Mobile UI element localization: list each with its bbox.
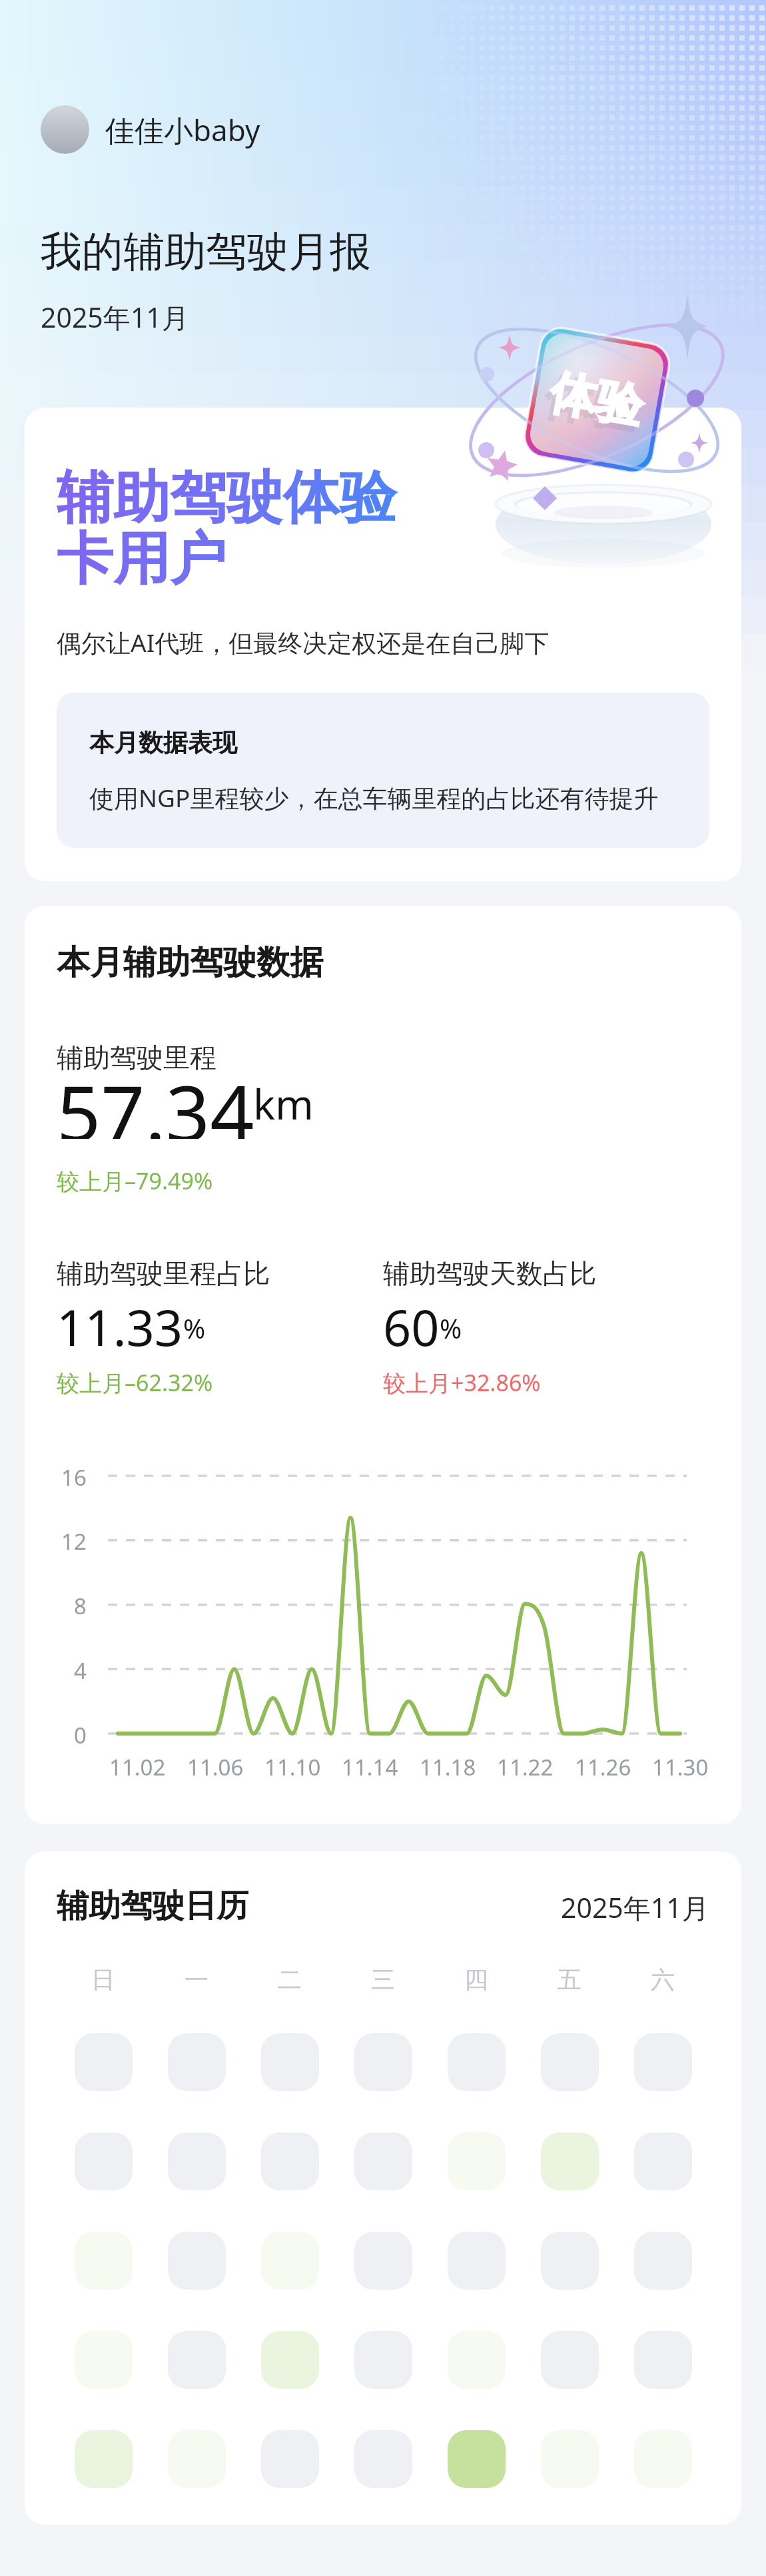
button[interactable] — [354, 2331, 412, 2389]
button[interactable]: Profile photo — [41, 105, 89, 154]
staticText: 使用NGP里程较少，在总车辆里程的占比还有待提升 — [89, 781, 659, 814]
button[interactable] — [75, 2033, 133, 2091]
staticText: % — [183, 1310, 206, 1346]
staticText: 佳佳小baby — [105, 110, 260, 150]
button[interactable] — [168, 2331, 226, 2389]
staticText: 11.06 — [187, 1752, 244, 1782]
button[interactable] — [541, 2033, 599, 2091]
button[interactable] — [448, 2033, 506, 2091]
button[interactable] — [75, 2331, 133, 2389]
button[interactable] — [168, 2232, 226, 2290]
staticText: 12 — [61, 1526, 87, 1556]
staticText: 11.14 — [342, 1752, 398, 1782]
button[interactable] — [75, 2132, 133, 2190]
button[interactable] — [261, 2033, 319, 2091]
staticText: 较上月–62.32% — [57, 1367, 213, 1398]
staticText: 辅助驾驶天数占比 — [383, 1257, 596, 1290]
staticText: 11.02 — [109, 1752, 166, 1782]
staticText: 四 — [464, 1965, 488, 1995]
staticText: 4 — [74, 1656, 87, 1686]
button[interactable] — [261, 2430, 319, 2488]
staticText: 偶尔让AI代班，但最终决定权还是在自己脚下 — [57, 625, 550, 659]
staticText: 本月辅助驾驶数据 — [57, 942, 323, 984]
staticText: 16 — [61, 1462, 87, 1492]
staticText: 五 — [558, 1965, 581, 1995]
button[interactable] — [448, 2232, 506, 2290]
staticText: 辅助驾驶日历 — [57, 1886, 248, 1926]
staticText: 11.18 — [420, 1752, 476, 1782]
button[interactable] — [354, 2232, 412, 2290]
staticText: 较上月–79.49% — [57, 1165, 213, 1196]
staticText: 57.34 — [57, 1059, 254, 1139]
button[interactable] — [261, 2331, 319, 2389]
button[interactable] — [261, 2132, 319, 2190]
staticText: 六 — [651, 1965, 675, 1995]
staticText: 0 — [74, 1720, 87, 1750]
button[interactable] — [354, 2430, 412, 2488]
button[interactable] — [75, 2232, 133, 2290]
staticText: 三 — [371, 1965, 395, 1995]
button[interactable] — [75, 2430, 133, 2488]
button[interactable] — [168, 2033, 226, 2091]
staticText: 11.10 — [264, 1752, 321, 1782]
button[interactable] — [448, 2430, 506, 2488]
button[interactable] — [634, 2430, 692, 2488]
button[interactable] — [634, 2331, 692, 2389]
staticText: km — [253, 1076, 314, 1131]
button[interactable] — [541, 2132, 599, 2190]
button[interactable] — [541, 2331, 599, 2389]
staticText: 辅助驾驶体验 卡用户 — [57, 462, 397, 595]
button[interactable] — [634, 2132, 692, 2190]
staticText: 11.30 — [652, 1752, 709, 1782]
button[interactable] — [261, 2232, 319, 2290]
staticText: 8 — [74, 1591, 87, 1621]
staticText: 一 — [185, 1965, 208, 1995]
staticText: 较上月+32.86% — [383, 1367, 541, 1398]
staticText: 日 — [91, 1965, 115, 1995]
staticText: 11.22 — [497, 1752, 554, 1782]
button[interactable] — [448, 2132, 506, 2190]
staticText: 11.26 — [575, 1752, 631, 1782]
staticText: 60 — [383, 1293, 440, 1351]
button[interactable] — [448, 2331, 506, 2389]
staticText: 辅助驾驶里程 — [57, 1041, 216, 1074]
staticText: 本月数据表现 — [89, 727, 237, 759]
staticText: 2025年11月 — [561, 1889, 709, 1926]
button[interactable] — [168, 2132, 226, 2190]
staticText: 体验 — [541, 368, 643, 442]
button[interactable] — [354, 2132, 412, 2190]
button[interactable] — [634, 2033, 692, 2091]
button[interactable] — [541, 2232, 599, 2290]
staticText: 辅助驾驶里程占比 — [57, 1257, 270, 1290]
staticText: 11.33 — [57, 1293, 183, 1351]
button[interactable] — [354, 2033, 412, 2091]
button[interactable] — [541, 2430, 599, 2488]
staticText: 二 — [278, 1965, 302, 1995]
staticText: 我的辅助驾驶月报 — [41, 226, 371, 278]
staticText: 体验 — [546, 363, 648, 437]
button[interactable] — [634, 2232, 692, 2290]
button[interactable] — [168, 2430, 226, 2488]
staticText: 2025年11月 — [41, 298, 189, 336]
staticText: % — [440, 1310, 462, 1346]
